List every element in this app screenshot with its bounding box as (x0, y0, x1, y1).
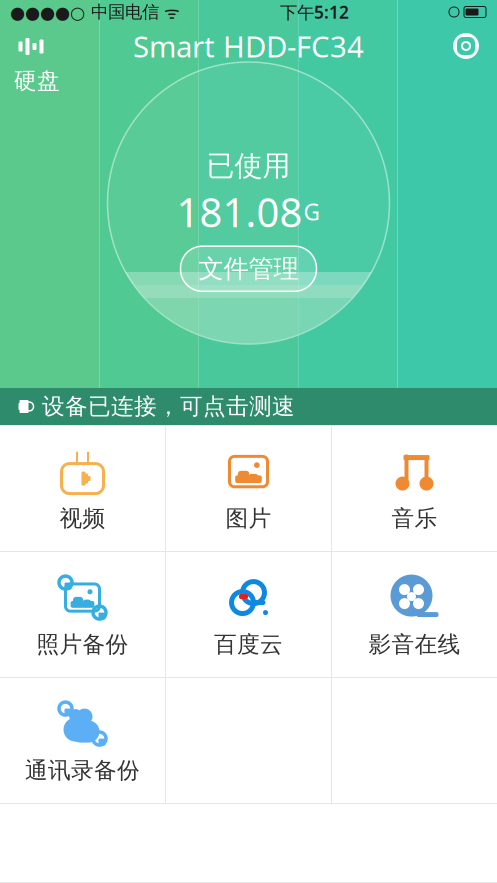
staticText: G (303, 197, 320, 227)
staticText: 181.08 (176, 185, 302, 238)
staticText: 照片备份 (36, 631, 128, 658)
button[interactable]: 视频 (0, 426, 165, 551)
staticText: 视频 (59, 505, 105, 532)
staticText: 音乐 (391, 505, 437, 532)
button[interactable]: 设置 (439, 25, 493, 67)
staticText: Smart HDD-FC34 (133, 26, 364, 65)
staticText: ᯤ (159, 0, 180, 23)
staticText: 通讯录备份 (25, 757, 140, 784)
staticText: 设备已连接，可点击测速 (42, 393, 295, 420)
staticText: 已使用 (206, 149, 290, 183)
staticText: 百度云 (214, 631, 283, 658)
button[interactable]: 通讯录备份 (0, 678, 165, 803)
staticText: ●●●●○ 中国电信 (10, 1, 159, 23)
button[interactable]: 图片 (166, 426, 331, 551)
button[interactable]: 文件管理 (180, 246, 316, 291)
staticText: 影音在线 (368, 631, 460, 658)
button[interactable]: 设备已连接，可点击测速 (0, 388, 497, 425)
staticText: 文件管理 (198, 253, 298, 284)
button[interactable]: 音乐 (332, 426, 497, 551)
button[interactable]: 百度云 (166, 552, 331, 677)
staticText: 硬盘 (14, 67, 60, 95)
button[interactable]: 照片备份 (0, 552, 165, 677)
staticText: 下午5:12 (280, 0, 349, 23)
button[interactable]: 影音在线 (332, 552, 497, 677)
staticText: 图片 (225, 505, 271, 532)
button[interactable]: 统计 (4, 25, 58, 67)
